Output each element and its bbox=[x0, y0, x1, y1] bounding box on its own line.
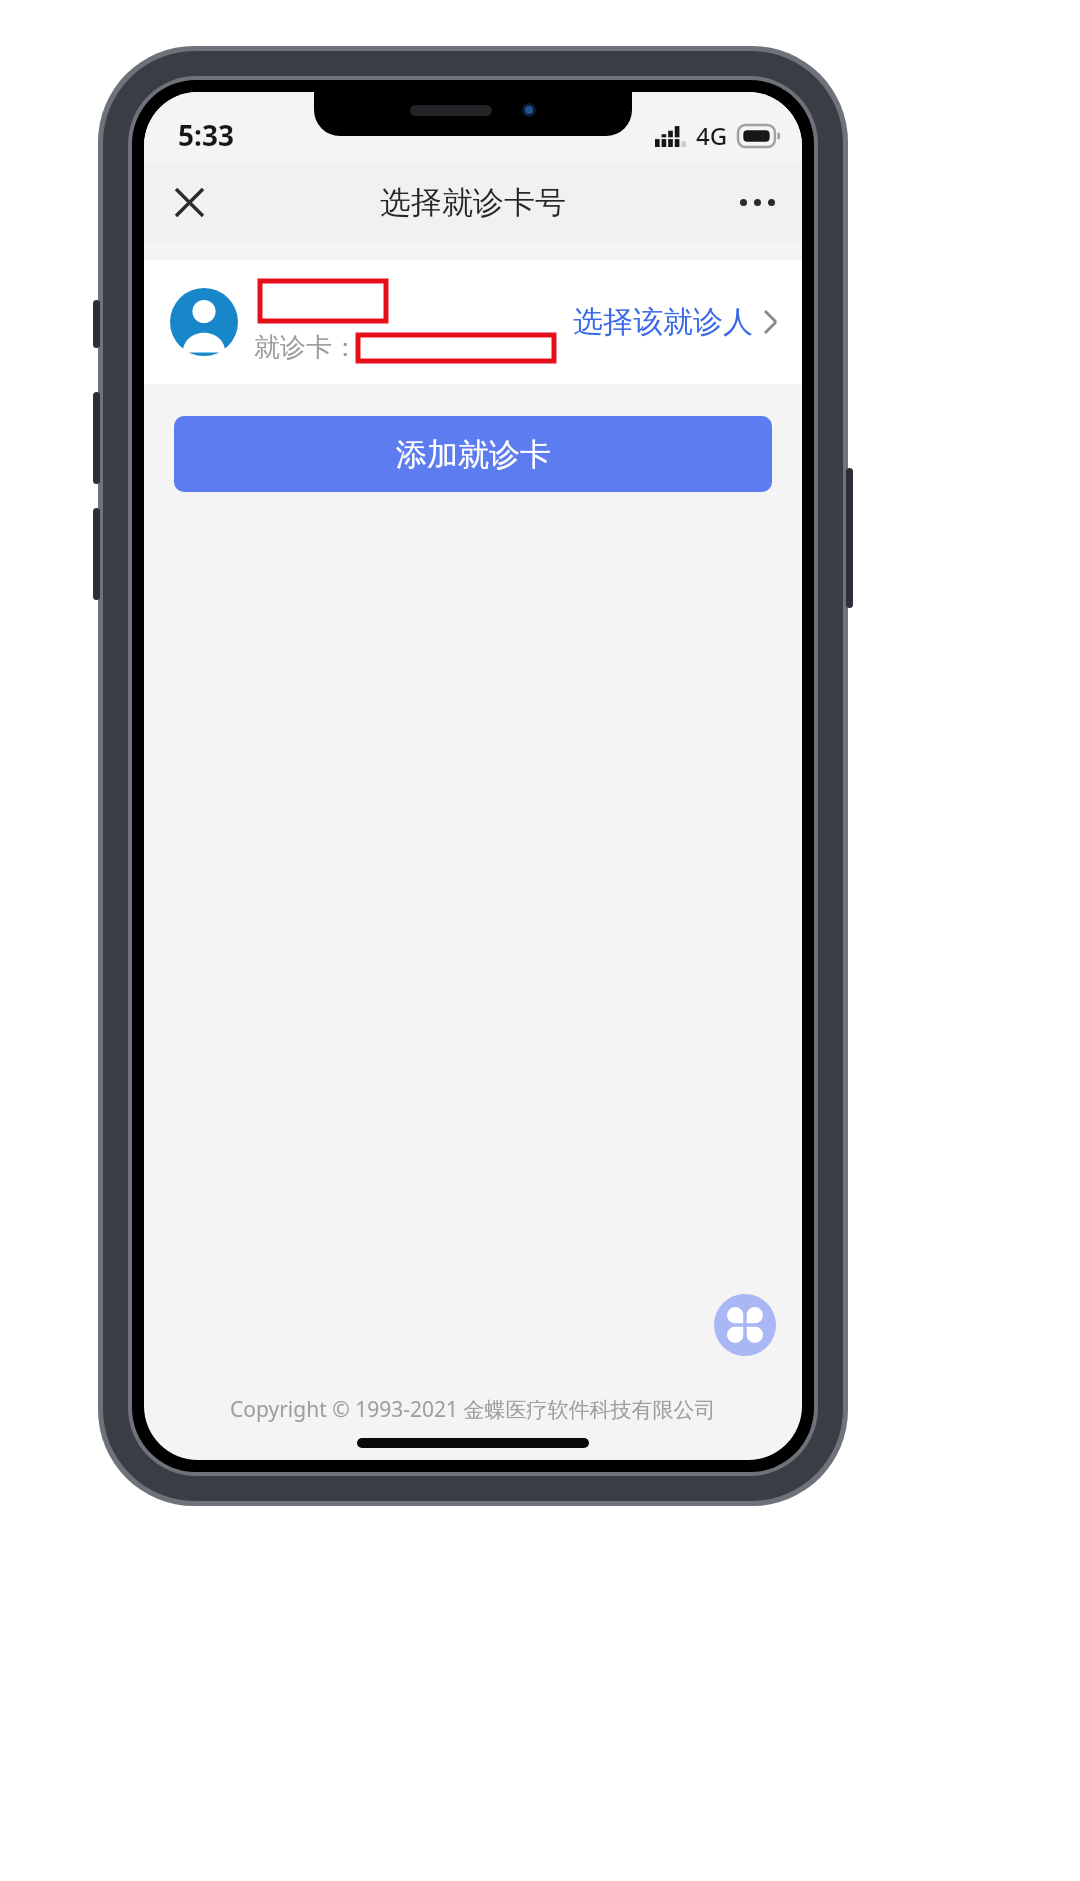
button[interactable]: 选择该就诊人 bbox=[569, 293, 782, 351]
button[interactable]: More options bbox=[724, 169, 790, 235]
staticText: 选择该就诊人 bbox=[573, 303, 753, 341]
button[interactable]: 就诊卡： bbox=[144, 260, 802, 384]
staticText: 5:33 bbox=[178, 116, 234, 154]
staticText: 选择就诊卡号 bbox=[380, 183, 566, 222]
button[interactable]: 添加就诊卡 bbox=[174, 416, 772, 492]
staticText: Copyright © 1993-2021 金蝶医疗软件科技有限公司 bbox=[230, 1395, 716, 1424]
button[interactable]: Close bbox=[156, 169, 222, 235]
staticText: 就诊卡： bbox=[254, 331, 358, 364]
button[interactable]: Mini program menu bbox=[714, 1294, 776, 1356]
staticText: 添加就诊卡 bbox=[396, 435, 551, 474]
staticText: 4G bbox=[696, 119, 728, 152]
